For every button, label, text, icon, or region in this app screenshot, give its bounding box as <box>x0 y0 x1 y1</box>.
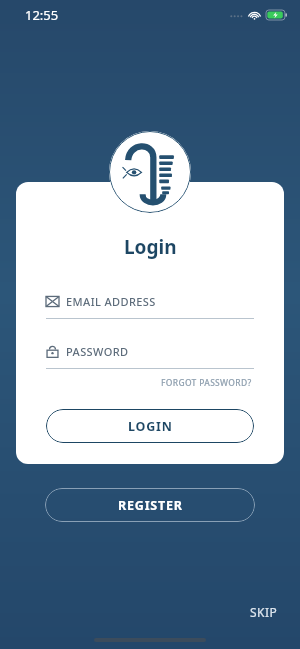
staticText: PASSWORD <box>66 344 129 359</box>
staticText: EMAIL ADDRESS <box>66 294 156 309</box>
other: Make-Up Artists & Hair Stylists Guild Lo… <box>109 131 191 213</box>
staticText: REGISTER <box>118 497 183 514</box>
button[interactable]: REGISTER <box>45 488 255 522</box>
button[interactable]: PASSWORD <box>46 344 254 369</box>
staticText: LOGIN <box>128 418 173 435</box>
staticText: 12:55 <box>25 6 59 24</box>
staticText: FORGOT PASSWORD? <box>161 377 252 389</box>
button[interactable]: LOGIN <box>46 409 254 443</box>
button[interactable]: EMAIL ADDRESS <box>46 294 254 319</box>
button[interactable]: SKIP <box>244 600 284 624</box>
button[interactable]: FORGOT PASSWORD? <box>159 375 254 391</box>
staticText: SKIP <box>250 604 278 620</box>
staticText: Login <box>124 234 177 260</box>
